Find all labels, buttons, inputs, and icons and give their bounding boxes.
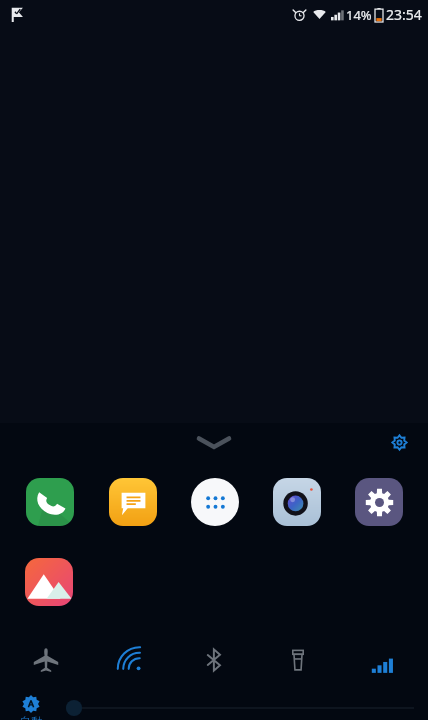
button[interactable]: Wi-Fi [88, 637, 172, 683]
button[interactable]: Brightness [62, 695, 414, 720]
button[interactable]: Mobile data [340, 637, 424, 683]
staticText: 14% [346, 6, 372, 24]
button[interactable]: Messages [91, 467, 174, 537]
button[interactable]: Settings [338, 467, 420, 537]
button[interactable]: Gallery [8, 547, 90, 617]
button[interactable]: Settings [382, 425, 416, 459]
button[interactable]: Auto brightness [0, 695, 62, 720]
button[interactable]: Bluetooth [172, 637, 256, 683]
button[interactable]: Airplane mode [4, 637, 88, 683]
button[interactable]: Camera [256, 467, 338, 537]
button[interactable]: Expand panel [186, 427, 242, 457]
staticText: 23:54 [386, 5, 422, 24]
button[interactable]: All apps [174, 467, 256, 537]
staticText: 自動 [20, 714, 42, 720]
button[interactable]: Phone [8, 467, 91, 537]
button[interactable]: Flashlight [256, 637, 340, 683]
